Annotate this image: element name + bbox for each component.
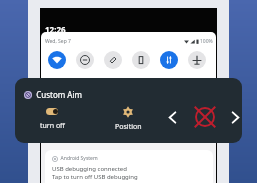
button[interactable]: Battery saver xyxy=(132,51,150,69)
staticText: Position xyxy=(115,122,142,132)
button[interactable]: Airplane mode xyxy=(188,51,206,69)
staticText: turn off xyxy=(40,121,65,131)
staticText: Android System xyxy=(58,155,98,162)
staticText: Wed, Sep 7 xyxy=(45,38,71,45)
staticText: Tap to turn off USB debugging xyxy=(52,173,138,181)
staticText: USB debugging connected xyxy=(52,165,127,173)
button[interactable]: Previous xyxy=(163,108,182,127)
button[interactable]: Auto-rotate xyxy=(104,51,122,69)
button[interactable]: Wi-Fi xyxy=(48,51,66,69)
button[interactable]: Next xyxy=(226,108,242,127)
button[interactable]: Mobile data xyxy=(160,51,178,69)
staticText: 12:26 xyxy=(45,24,66,35)
button[interactable]: Android System xyxy=(45,150,213,183)
staticText: Custom Aim xyxy=(32,89,82,100)
button[interactable]: Crosshair preview xyxy=(190,102,220,132)
staticText: 100% xyxy=(200,38,213,45)
button[interactable]: Position xyxy=(110,106,146,132)
button[interactable]: Do not disturb xyxy=(76,51,94,69)
button[interactable]: turn off xyxy=(34,108,70,131)
